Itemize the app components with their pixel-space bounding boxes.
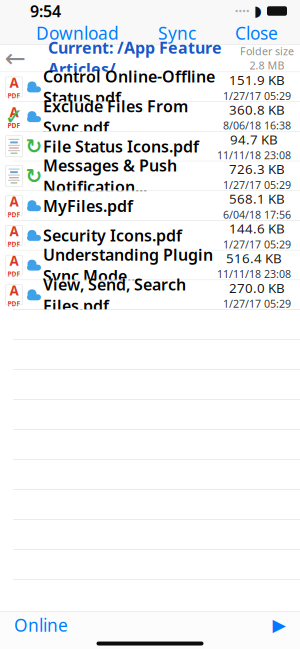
button[interactable]: A [0, 102, 300, 132]
staticText: 11/11/18 23:08 [217, 148, 291, 162]
staticText: 516.4 KB [226, 249, 282, 267]
staticText: A [9, 74, 18, 91]
staticText: ← [4, 44, 25, 73]
staticText: PDF [7, 121, 20, 130]
staticText: PDF [7, 210, 20, 219]
button[interactable]: ↻ [0, 161, 300, 191]
staticText: ✓ [4, 104, 23, 129]
staticText: 94.7 KB [230, 130, 278, 148]
staticText: PDF [7, 91, 20, 100]
staticText: 11/11/18 23:08 [217, 267, 291, 281]
staticText: Current: /App Feature Articles/ [48, 37, 222, 79]
staticText: Close [235, 21, 278, 44]
staticText: A [9, 103, 18, 121]
staticText: A [9, 192, 18, 210]
staticText: 144.6 KB [229, 219, 285, 237]
staticText: 9:54 [30, 0, 61, 22]
staticText: MyFiles.pdf [43, 195, 133, 216]
staticText: 568.1 KB [229, 190, 285, 207]
staticText: 151.9 KB [229, 71, 285, 89]
button[interactable]: Back [0, 46, 30, 70]
staticText: Messages & Push Notification... [43, 155, 177, 197]
staticText: Understanding Plugin Sync Mode... [43, 244, 213, 286]
staticText: Download [36, 21, 119, 44]
staticText: 270.0 KB [229, 279, 285, 297]
button[interactable]: A [0, 72, 300, 102]
button[interactable]: Download [28, 18, 127, 47]
staticText: A [9, 222, 18, 240]
staticText: A [9, 252, 18, 269]
staticText: File Status Icons.pdf [43, 136, 199, 157]
button[interactable]: Sync [150, 18, 204, 47]
button[interactable]: A [0, 221, 300, 251]
staticText: 6/04/18 17:56 [223, 207, 291, 222]
staticText: Folder size [240, 44, 294, 58]
staticText: ↻ [25, 165, 42, 187]
staticText: Online [14, 613, 68, 636]
staticText: 1/27/17 05:29 [223, 89, 291, 103]
staticText: 726.3 KB [229, 160, 285, 178]
button[interactable]: ↻ [0, 132, 300, 161]
staticText: PDF [7, 269, 20, 278]
staticText: A [9, 281, 18, 299]
staticText: 1/27/17 05:29 [223, 297, 291, 311]
button[interactable]: A [0, 191, 300, 221]
staticText: ◗ [254, 3, 262, 19]
button[interactable]: A [0, 280, 300, 310]
staticText: PDF [7, 240, 20, 249]
staticText: PDF [7, 299, 20, 308]
button[interactable]: Close [227, 18, 286, 47]
button[interactable]: A [0, 251, 300, 280]
staticText: View, Send, Search Files.pdf [43, 274, 186, 316]
staticText: 1/27/17 05:29 [223, 178, 291, 192]
button[interactable]: Go [264, 614, 294, 636]
staticText: Security Icons.pdf [43, 225, 182, 246]
staticText: Sync [158, 21, 196, 44]
staticText: 1/27/17 05:29 [223, 237, 291, 251]
staticText: 8/06/18 16:38 [223, 118, 291, 133]
staticText: Control Online-Offline Status.pdf [43, 66, 215, 108]
staticText: 360.8 KB [229, 101, 285, 118]
staticText: 2.8 MB [249, 58, 284, 72]
staticText: Exclude Files From Sync.pdf [43, 95, 188, 138]
staticText: ↻ [25, 135, 42, 158]
staticText: ▶ [272, 615, 285, 635]
button[interactable]: Online [8, 609, 74, 640]
